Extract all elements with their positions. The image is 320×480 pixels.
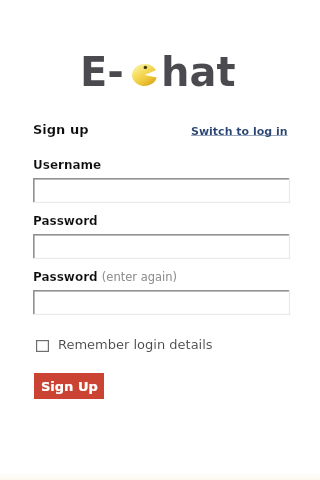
staticText: Sign Up <box>41 379 98 394</box>
button[interactable]: Sign Up <box>34 373 104 399</box>
button[interactable]: Username input field <box>33 178 290 203</box>
staticText: Switch to log in <box>191 125 288 138</box>
staticText: Password (enter again) <box>33 270 178 284</box>
button[interactable]: Remember login details <box>30 334 216 358</box>
staticText: Password <box>33 214 98 228</box>
button[interactable]: Switch to log in <box>191 125 288 138</box>
staticText: E- <box>80 49 124 96</box>
staticText: Sign up <box>33 122 89 137</box>
staticText: Username <box>33 158 102 172</box>
staticText: hat <box>161 49 236 96</box>
button[interactable]: Repeat password input field <box>33 290 290 315</box>
button[interactable]: Password input field <box>33 234 290 259</box>
staticText: Remember login details <box>58 337 213 352</box>
